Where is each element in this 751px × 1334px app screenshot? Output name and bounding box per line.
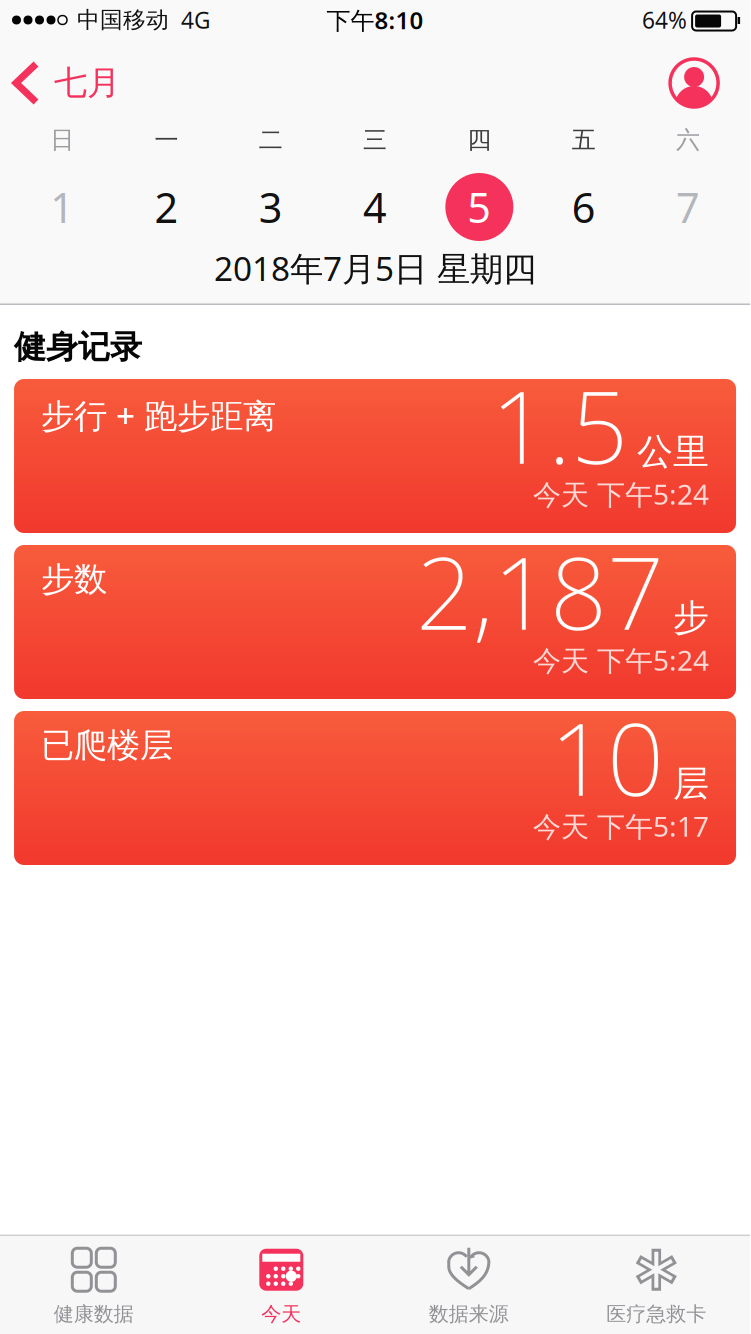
staticText: 已爬楼层 [41, 725, 173, 766]
staticText: 2018年7月5日 星期四 [214, 246, 536, 290]
staticText: 六 [676, 125, 700, 155]
staticText: 日 [50, 125, 74, 155]
staticText: 今天 下午5:24 [533, 475, 709, 513]
staticText: 3 [259, 180, 283, 234]
staticText: 五 [572, 125, 596, 155]
staticText: 7 [676, 180, 700, 234]
staticText: 1 [50, 180, 74, 234]
staticText: 10 [550, 691, 664, 823]
staticText: 健身记录 [14, 327, 142, 367]
staticText: 公里 [637, 430, 709, 474]
button[interactable]: 数据来源 [375, 1236, 562, 1326]
staticText: 步 [673, 596, 709, 640]
staticText: 步数 [41, 559, 107, 600]
staticText: 5 [467, 180, 491, 234]
staticText: 今天 [261, 1302, 301, 1326]
button[interactable]: 4 [323, 172, 427, 242]
staticText: 医疗急救卡 [606, 1302, 706, 1326]
staticText: 今天 下午5:17 [533, 807, 709, 845]
button[interactable]: 7 [636, 172, 740, 242]
staticText: 四 [467, 125, 491, 155]
button[interactable]: Profile [670, 59, 718, 107]
staticText: 64% [642, 5, 687, 35]
button[interactable]: 七月 [12, 62, 120, 104]
button[interactable]: 步行 + 跑步距离 [14, 379, 736, 533]
button[interactable]: 步数 [14, 545, 736, 699]
staticText: 三 [363, 125, 387, 155]
staticText: 下午8:10 [326, 4, 423, 36]
staticText: 今天 下午5:24 [533, 641, 709, 679]
staticText: 数据来源 [429, 1302, 509, 1326]
staticText: 中国移动 [77, 6, 169, 34]
staticText: 健康数据 [54, 1302, 134, 1326]
button[interactable]: 3 [219, 172, 323, 242]
staticText: 二 [259, 125, 283, 155]
button[interactable]: 1 [10, 172, 114, 242]
staticText: 1.5 [491, 359, 628, 491]
button[interactable]: 今天 [187, 1236, 375, 1326]
staticText: 2,187 [416, 525, 664, 657]
staticText: 6 [572, 180, 596, 234]
button[interactable]: 6 [531, 172, 636, 242]
staticText: 七月 [54, 62, 120, 103]
button[interactable]: 健康数据 [0, 1236, 187, 1326]
staticText: 一 [154, 125, 178, 155]
staticText: 层 [673, 762, 709, 806]
staticText: 4G [181, 5, 211, 35]
button[interactable]: 5 [427, 172, 531, 242]
button[interactable]: 已爬楼层 [14, 711, 736, 865]
staticText: 4 [363, 180, 387, 234]
staticText: 2 [154, 180, 178, 234]
staticText: 步行 + 跑步距离 [41, 393, 276, 437]
button[interactable]: 2 [114, 172, 219, 242]
button[interactable]: 医疗急救卡 [562, 1236, 750, 1326]
